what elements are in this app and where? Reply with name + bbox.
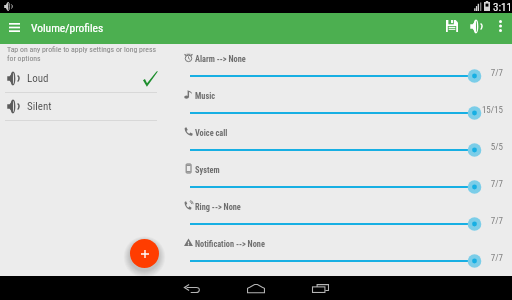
button[interactable]: Silent — [0, 92, 165, 120]
button[interactable]: Music volume — [186, 104, 481, 122]
button[interactable]: System volume — [186, 178, 481, 196]
button[interactable]: Alarm --> None volume — [186, 67, 481, 85]
button[interactable]: Recent apps — [298, 276, 343, 300]
button[interactable]: More options — [489, 15, 511, 37]
staticText: Volume/profiles — [31, 21, 104, 34]
button[interactable]: Volume — [465, 15, 487, 37]
button[interactable]: Home — [233, 276, 278, 300]
staticText: 7/7 — [490, 253, 503, 264]
staticText: 5/5 — [490, 142, 503, 153]
button[interactable]: Back — [169, 276, 214, 300]
staticText: Ring --> None — [195, 202, 241, 212]
staticText: 3:11 — [493, 1, 512, 14]
staticText: Notification --> None — [195, 239, 265, 249]
staticText: 15/15 — [481, 105, 503, 116]
button[interactable]: Ring --> None volume — [186, 215, 481, 233]
button[interactable]: Save — [441, 15, 463, 37]
staticText: 7/7 — [490, 216, 503, 227]
staticText: Silent — [27, 100, 52, 113]
staticText: Tap on any profile to apply settings or … — [7, 45, 158, 63]
staticText: 7/7 — [490, 68, 503, 79]
button[interactable]: Notification --> None volume — [186, 252, 481, 270]
staticText: Loud — [27, 72, 49, 85]
button[interactable]: Loud — [0, 64, 165, 92]
staticText: 7/7 — [490, 179, 503, 190]
button[interactable]: Open navigation drawer — [2, 14, 26, 41]
staticText: Voice call — [195, 128, 228, 138]
button[interactable]: Add profile — [130, 239, 159, 268]
button[interactable]: Voice call volume — [186, 141, 481, 159]
staticText: Music — [195, 91, 216, 101]
staticText: System — [195, 165, 220, 175]
staticText: Alarm --> None — [195, 54, 246, 64]
